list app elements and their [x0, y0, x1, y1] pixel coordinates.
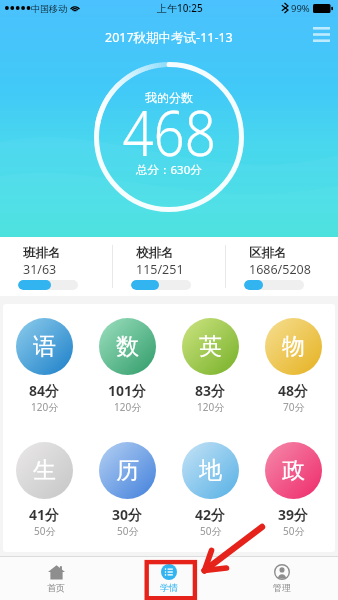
- staticText: 83分: [195, 381, 226, 400]
- staticText: 中国移动: [31, 3, 67, 14]
- staticText: 学情: [160, 582, 178, 593]
- staticText: 115/251: [136, 261, 184, 278]
- staticText: 48分: [278, 381, 309, 400]
- staticText: 70分: [283, 400, 305, 414]
- staticText: 31/63: [23, 261, 57, 278]
- staticText: 首页: [47, 582, 65, 593]
- staticText: 上午10:25: [157, 1, 203, 15]
- staticText: 2017秋期中考试-11-13: [105, 29, 233, 46]
- staticText: 历: [116, 456, 139, 485]
- staticText: 39分: [278, 505, 309, 524]
- button[interactable]: 政: [252, 442, 335, 538]
- staticText: 我的分数: [145, 90, 193, 105]
- staticText: 班排名: [23, 245, 61, 261]
- staticText: 物: [282, 332, 305, 361]
- button[interactable]: Menu: [305, 22, 337, 46]
- staticText: 30分: [112, 505, 143, 524]
- staticText: 99%: [291, 2, 310, 15]
- staticText: 语: [33, 332, 56, 361]
- staticText: 数: [116, 332, 139, 361]
- staticText: 42分: [195, 505, 226, 524]
- button[interactable]: 英: [169, 318, 252, 414]
- button[interactable]: 校排名: [113, 237, 225, 296]
- staticText: 政: [282, 456, 305, 485]
- button[interactable]: 生: [3, 442, 86, 538]
- button[interactable]: 物: [252, 318, 335, 414]
- staticText: 英: [199, 332, 222, 361]
- staticText: 校排名: [136, 245, 174, 261]
- staticText: 生: [33, 456, 56, 485]
- staticText: 468: [122, 90, 217, 174]
- staticText: 50分: [117, 524, 139, 538]
- staticText: 50分: [200, 524, 222, 538]
- staticText: 50分: [283, 524, 305, 538]
- button[interactable]: 历: [86, 442, 169, 538]
- staticText: 50分: [34, 524, 56, 538]
- button[interactable]: 管理: [225, 557, 338, 600]
- staticText: 84分: [29, 381, 60, 400]
- button[interactable]: 地: [169, 442, 252, 538]
- button[interactable]: 区排名: [226, 237, 338, 296]
- staticText: 101分: [108, 381, 147, 400]
- button[interactable]: 首页: [0, 557, 112, 600]
- staticText: 120分: [197, 400, 225, 414]
- staticText: 1686/5208: [249, 261, 311, 278]
- staticText: 区排名: [249, 245, 287, 261]
- staticText: 41分: [29, 505, 60, 524]
- button[interactable]: 学情: [112, 557, 225, 600]
- button[interactable]: 班排名: [0, 237, 112, 296]
- staticText: 120分: [31, 400, 59, 414]
- staticText: 管理: [273, 582, 291, 593]
- button[interactable]: 数: [86, 318, 169, 414]
- staticText: 地: [199, 456, 222, 485]
- staticText: 总分：630分: [136, 162, 202, 178]
- staticText: 120分: [114, 400, 142, 414]
- button[interactable]: 语: [3, 318, 86, 414]
